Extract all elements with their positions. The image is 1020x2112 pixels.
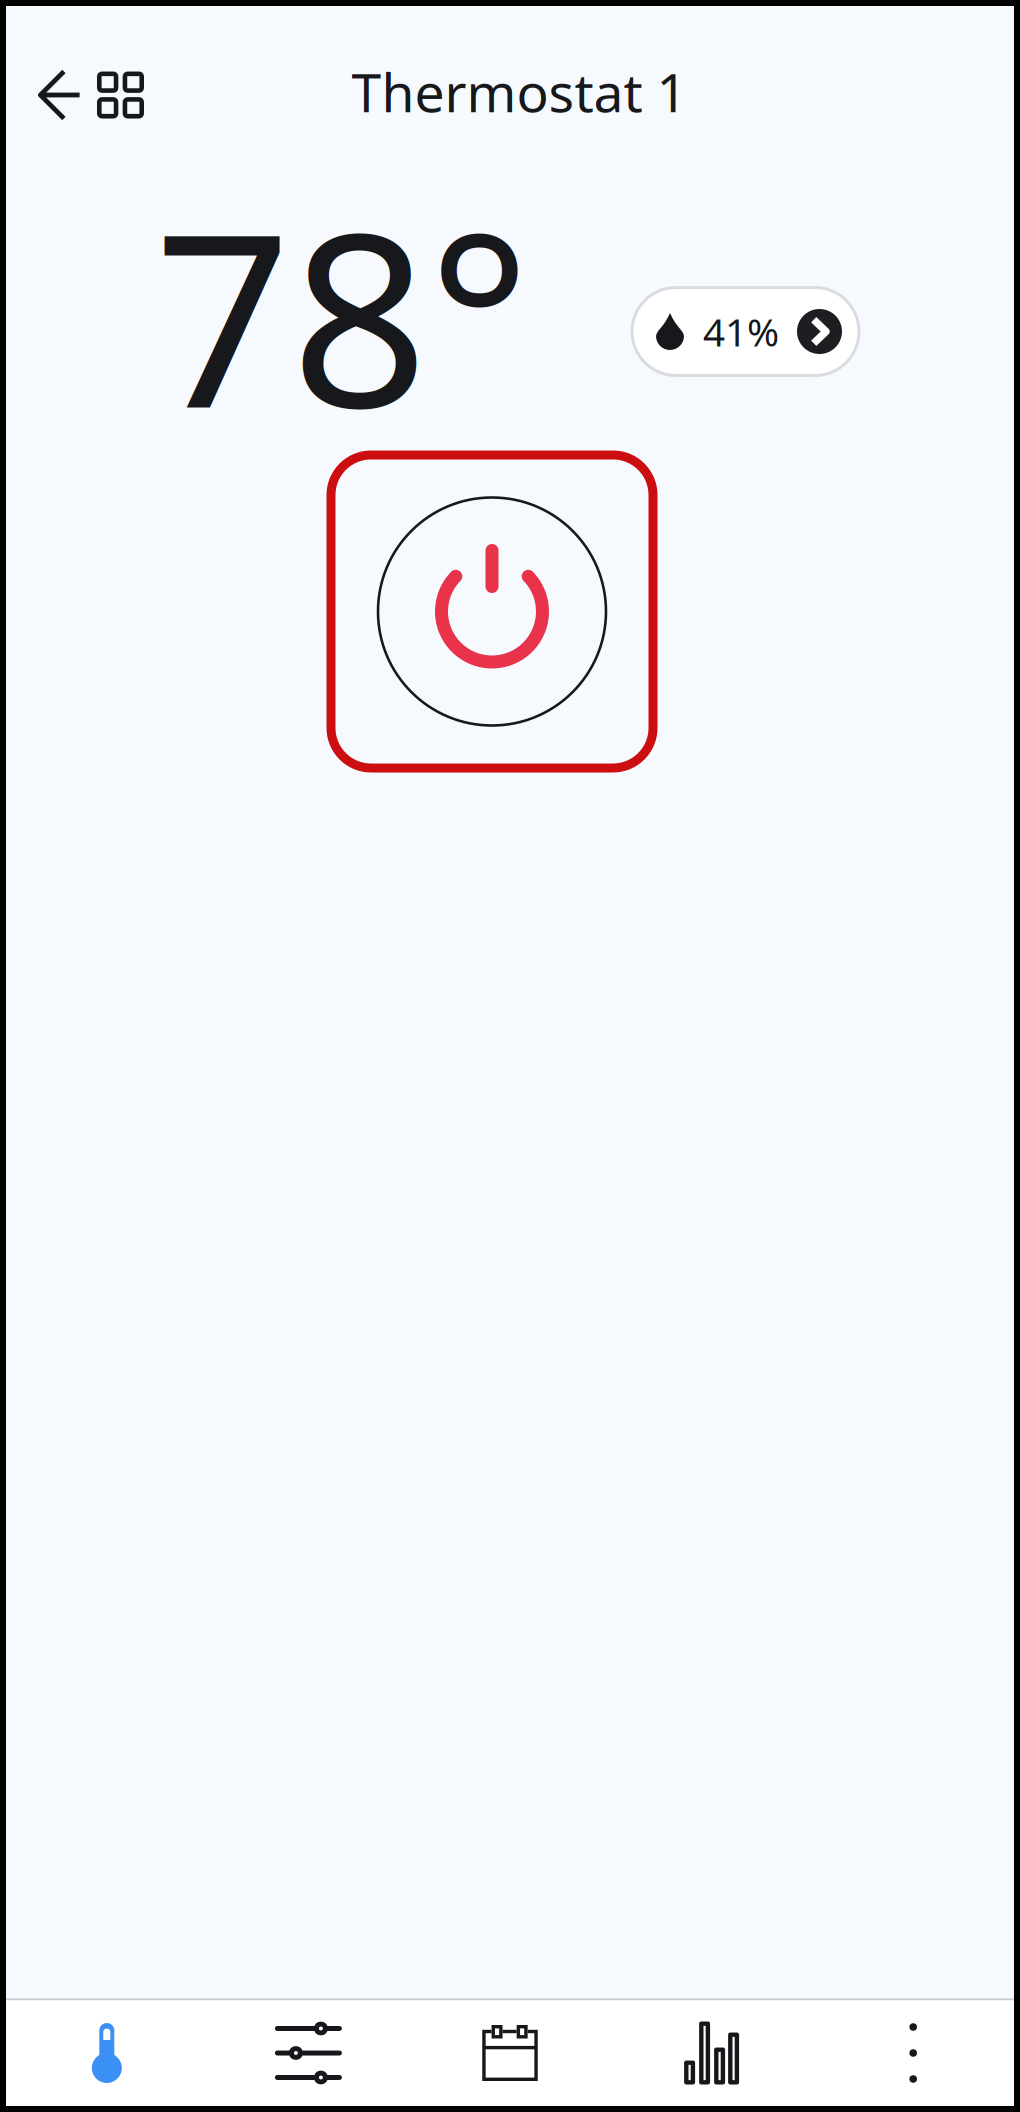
button[interactable]: Power [331,455,653,768]
staticText: 78° [154,155,531,474]
button[interactable]: 41% [632,287,859,375]
button[interactable]: Temperature [6,2001,208,2105]
staticText: 41% [703,306,779,357]
button[interactable]: Schedule [409,2001,611,2105]
button[interactable]: More [812,2001,1014,2105]
button[interactable]: Back to rooms [6,6,168,184]
staticText: Thermostat 1 [351,56,687,127]
button[interactable]: Statistics [611,2001,812,2105]
button[interactable]: Controls [208,2001,409,2105]
